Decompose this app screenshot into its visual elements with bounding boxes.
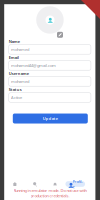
button[interactable]: Home (5, 181, 25, 187)
button[interactable]: Notifications (45, 181, 65, 187)
staticText: Running in emulator mode. Do not use wit… (13, 188, 86, 198)
button[interactable]: Edit photo (57, 32, 63, 38)
staticText: mohamed44@gmail.com (11, 63, 56, 68)
staticText: Name (9, 39, 20, 44)
staticText: Email (9, 55, 19, 60)
staticText: mohamed (11, 47, 29, 52)
button[interactable]: Update (13, 113, 88, 123)
staticText: mohamed (11, 79, 29, 84)
staticText: Username (9, 71, 29, 76)
staticText: Profile (72, 179, 82, 189)
button[interactable]: Search (25, 181, 45, 187)
button[interactable]: Profile (65, 181, 85, 187)
staticText: Update (43, 116, 58, 121)
staticText: Active (11, 95, 22, 100)
staticText: Status (9, 87, 22, 92)
